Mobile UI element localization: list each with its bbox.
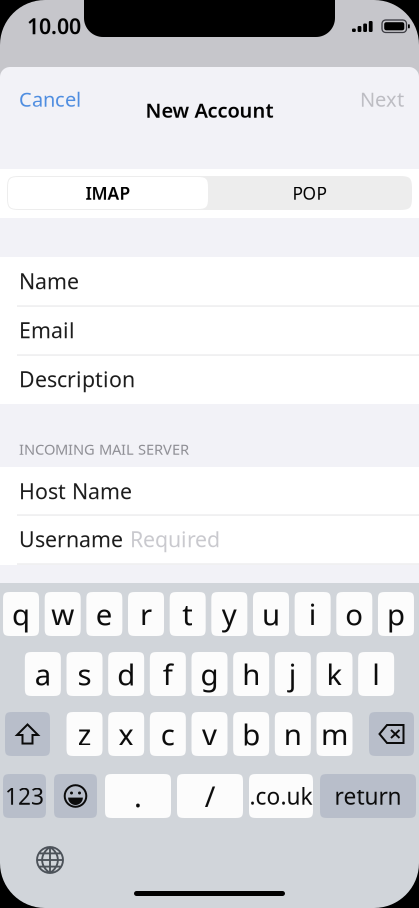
staticText: h xyxy=(242,654,260,693)
button[interactable]: d xyxy=(108,652,144,696)
staticText: return xyxy=(334,781,401,811)
button[interactable]: . xyxy=(105,774,171,818)
staticText: Name xyxy=(19,267,79,295)
button[interactable]: Next xyxy=(311,85,411,113)
button[interactable]: IMAP xyxy=(8,177,208,209)
staticText: Email xyxy=(19,316,75,344)
button[interactable]: f xyxy=(150,652,186,696)
staticText: r xyxy=(140,594,152,633)
button[interactable]: o xyxy=(336,592,372,636)
staticText: 123 xyxy=(5,781,44,811)
staticText: m xyxy=(321,714,348,753)
staticText: . xyxy=(134,776,142,815)
staticText: .co.uk xyxy=(249,781,312,811)
button[interactable]: Description xyxy=(0,355,419,403)
button[interactable]: c xyxy=(150,712,186,756)
staticText: z xyxy=(77,714,91,753)
button[interactable]: w xyxy=(45,592,81,636)
button[interactable]: p xyxy=(378,592,414,636)
button[interactable]: Emoji xyxy=(54,774,97,818)
staticText: Next xyxy=(360,86,404,112)
staticText: l xyxy=(372,654,380,693)
staticText: INCOMING MAIL SERVER xyxy=(19,439,189,459)
staticText: k xyxy=(326,654,342,693)
staticText: q xyxy=(12,594,30,633)
button[interactable]: / xyxy=(177,774,243,818)
button[interactable]: q xyxy=(3,592,39,636)
staticText: e xyxy=(96,594,113,633)
staticText: u xyxy=(262,594,280,633)
staticText: c xyxy=(161,714,175,753)
button[interactable]: g xyxy=(191,652,227,696)
staticText: p xyxy=(387,594,405,633)
button[interactable]: l xyxy=(358,652,394,696)
button[interactable]: u xyxy=(253,592,289,636)
button[interactable]: Username xyxy=(0,515,419,563)
staticText: Host Name xyxy=(19,477,132,505)
button[interactable]: Name xyxy=(0,257,419,305)
button[interactable]: 123 xyxy=(3,774,46,818)
staticText: x xyxy=(118,714,134,753)
button[interactable]: .co.uk xyxy=(249,774,313,818)
staticText: o xyxy=(345,594,363,633)
button[interactable]: return xyxy=(320,774,416,818)
button[interactable]: y xyxy=(211,592,247,636)
button[interactable]: j xyxy=(275,652,311,696)
staticText: Required xyxy=(130,525,220,553)
staticText: f xyxy=(163,654,173,693)
staticText: w xyxy=(51,594,74,633)
button[interactable]: Cancel xyxy=(8,85,108,113)
button[interactable]: a xyxy=(25,652,61,696)
button[interactable]: Shift xyxy=(5,712,50,756)
staticText: Description xyxy=(19,365,135,393)
button[interactable]: m xyxy=(316,712,352,756)
button[interactable]: k xyxy=(316,652,352,696)
staticText: t xyxy=(182,594,193,633)
staticText: IMAP xyxy=(85,181,130,204)
button[interactable]: e xyxy=(86,592,122,636)
button[interactable]: t xyxy=(170,592,206,636)
staticText: g xyxy=(200,654,218,693)
button[interactable]: Host Name xyxy=(0,467,419,515)
staticText: Cancel xyxy=(19,86,81,112)
staticText: POP xyxy=(292,181,326,204)
button[interactable]: r xyxy=(128,592,164,636)
button[interactable]: Next keyboard xyxy=(34,844,66,876)
button[interactable]: POP xyxy=(208,177,411,209)
button[interactable]: x xyxy=(108,712,144,756)
button[interactable]: v xyxy=(191,712,227,756)
staticText: n xyxy=(284,714,302,753)
button[interactable]: n xyxy=(275,712,311,756)
button[interactable]: h xyxy=(233,652,269,696)
staticText: y xyxy=(222,594,237,633)
button[interactable]: b xyxy=(233,712,269,756)
button[interactable]: z xyxy=(66,712,102,756)
staticText: s xyxy=(77,654,91,693)
button[interactable]: Delete xyxy=(369,712,414,756)
button[interactable]: i xyxy=(295,592,331,636)
staticText: j xyxy=(289,654,297,693)
staticText: 10.00 xyxy=(27,12,81,40)
button[interactable]: s xyxy=(66,652,102,696)
staticText: New Account xyxy=(145,97,273,123)
staticText: / xyxy=(204,776,215,815)
staticText: i xyxy=(309,594,317,633)
staticText: Username xyxy=(19,525,123,553)
staticText: d xyxy=(117,654,135,693)
staticText: a xyxy=(35,654,51,693)
staticText: v xyxy=(202,714,217,753)
button[interactable]: Email xyxy=(0,306,419,354)
staticText: b xyxy=(242,714,260,753)
